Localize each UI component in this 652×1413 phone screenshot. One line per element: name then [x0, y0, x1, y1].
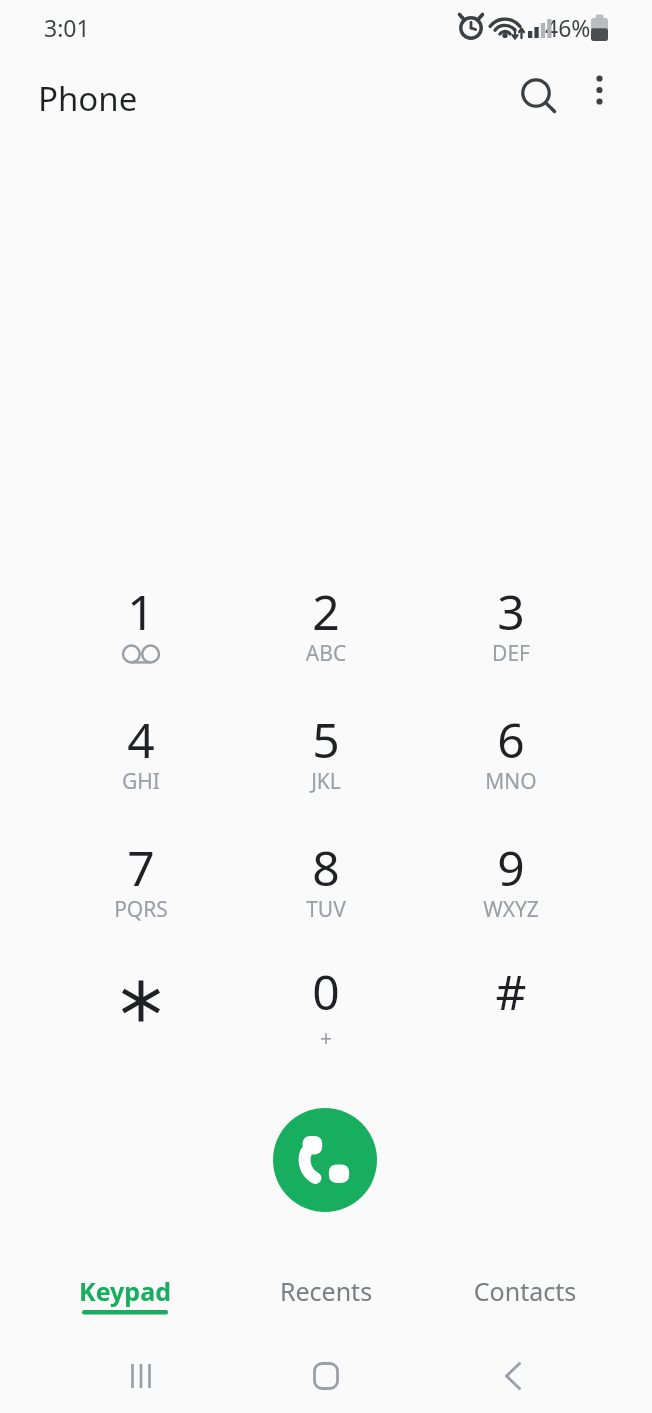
button[interactable]: 0	[246, 953, 406, 1073]
staticText: ABC	[246, 639, 406, 668]
staticText: TUV	[246, 895, 406, 924]
button[interactable]: 2	[246, 573, 406, 693]
staticText: 5	[246, 707, 406, 772]
button[interactable]: 3	[431, 573, 591, 693]
staticText: JKL	[246, 767, 406, 796]
button[interactable]: Keypad	[30, 1262, 220, 1328]
button[interactable]: #	[431, 953, 591, 1073]
staticText: 3	[431, 579, 591, 644]
staticText: Keypad	[30, 1274, 220, 1308]
staticText: 3:01	[44, 12, 90, 43]
button[interactable]: Back	[466, 1344, 556, 1408]
button[interactable]: 6	[431, 701, 591, 821]
button[interactable]: Home	[281, 1344, 371, 1408]
button[interactable]: 1	[61, 573, 221, 693]
staticText: 2	[246, 579, 406, 644]
staticText: DEF	[431, 639, 591, 668]
button[interactable]: Recents	[231, 1262, 421, 1328]
button[interactable]: Call	[273, 1108, 377, 1212]
button[interactable]: Contacts	[430, 1262, 620, 1328]
button[interactable]	[61, 953, 221, 1073]
button[interactable]: Search	[508, 66, 568, 126]
button[interactable]: 9	[431, 829, 591, 949]
staticText: 9	[431, 835, 591, 900]
staticText: 6	[431, 707, 591, 772]
button[interactable]: 7	[61, 829, 221, 949]
staticText: #	[431, 959, 591, 1024]
staticText: 46%	[545, 12, 591, 43]
staticText: +	[246, 1024, 406, 1053]
staticText: 0	[246, 959, 406, 1024]
staticText: Phone	[38, 76, 138, 121]
staticText: GHI	[61, 767, 221, 796]
staticText: Contacts	[430, 1274, 620, 1308]
staticText: MNO	[431, 767, 591, 796]
staticText: Recents	[231, 1274, 421, 1308]
button[interactable]: More options	[572, 66, 626, 120]
button[interactable]: 5	[246, 701, 406, 821]
staticText: 4	[61, 707, 221, 772]
button[interactable]: 8	[246, 829, 406, 949]
staticText: PQRS	[61, 895, 221, 924]
staticText: 1	[61, 579, 221, 644]
button[interactable]: 4	[61, 701, 221, 821]
staticText: 8	[246, 835, 406, 900]
button[interactable]: Recent apps	[96, 1344, 186, 1408]
staticText: 7	[61, 835, 221, 900]
staticText: WXYZ	[431, 895, 591, 924]
